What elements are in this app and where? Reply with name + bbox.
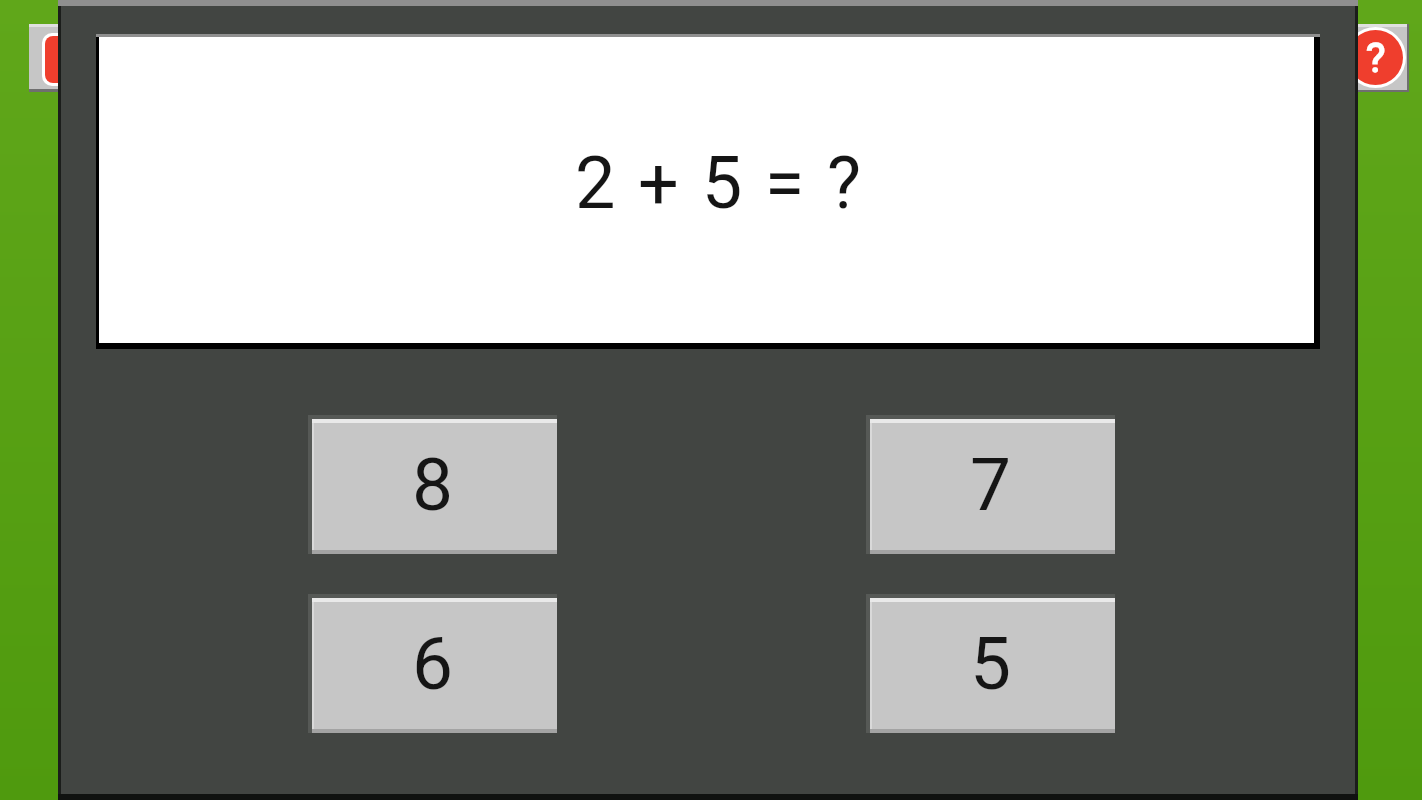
button[interactable]: 8 (308, 415, 557, 554)
staticText: 6 (412, 621, 454, 707)
staticText: ? (1366, 34, 1386, 82)
staticText: 7 (970, 442, 1012, 528)
button[interactable]: 7 (866, 415, 1115, 554)
staticText: 5 (970, 621, 1012, 707)
staticText: 2 + 5 = ? (575, 141, 864, 225)
button[interactable] (29, 24, 97, 92)
button[interactable]: 5 (866, 594, 1115, 733)
staticText: 8 (412, 442, 454, 528)
button[interactable]: 6 (308, 594, 557, 733)
button[interactable]: ? (1341, 24, 1409, 92)
